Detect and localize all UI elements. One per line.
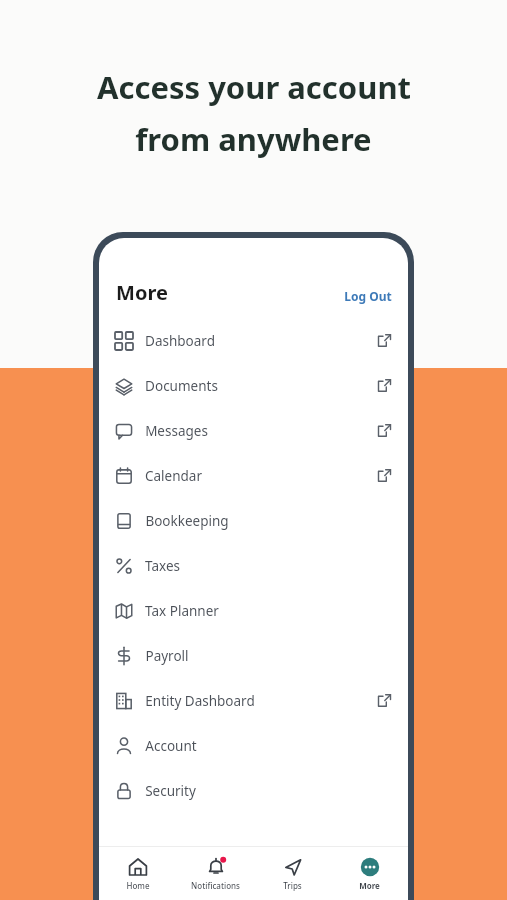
staticText: More <box>359 880 380 891</box>
button[interactable]: Calendar <box>99 453 408 498</box>
staticText: Entity Dashboard <box>145 692 255 710</box>
staticText: Taxes <box>145 557 180 575</box>
staticText: Bookkeeping <box>145 512 229 530</box>
staticText: Account <box>145 737 197 755</box>
staticText: Access your account <box>97 66 411 108</box>
button[interactable]: Home <box>99 851 177 897</box>
staticText: Notifications <box>191 880 240 891</box>
staticText: Log Out <box>344 288 392 304</box>
button[interactable]: Documents <box>99 363 408 408</box>
staticText: Trips <box>283 880 302 891</box>
button[interactable]: Log Out <box>336 288 392 318</box>
button[interactable]: Trips <box>254 851 331 897</box>
staticText: More <box>116 279 168 306</box>
staticText: Calendar <box>145 467 202 485</box>
staticText: Dashboard <box>145 332 215 350</box>
staticText: from anywhere <box>135 118 372 160</box>
button[interactable]: Dashboard <box>99 318 408 363</box>
button[interactable]: Taxes <box>99 543 408 588</box>
button[interactable]: Payroll <box>99 633 408 678</box>
button[interactable]: Entity Dashboard <box>99 678 408 723</box>
staticText: Security <box>145 782 196 800</box>
button[interactable]: Messages <box>99 408 408 453</box>
staticText: Documents <box>145 377 218 395</box>
staticText: Payroll <box>145 647 189 665</box>
button[interactable]: Security <box>99 768 408 813</box>
staticText: Home <box>126 880 150 891</box>
button[interactable]: Bookkeeping <box>99 498 408 543</box>
button[interactable]: Notifications <box>177 851 254 897</box>
button[interactable]: Tax Planner <box>99 588 408 633</box>
button[interactable]: Account <box>99 723 408 768</box>
button[interactable]: More <box>331 851 408 897</box>
staticText: Messages <box>145 422 208 440</box>
staticText: Tax Planner <box>145 602 219 620</box>
